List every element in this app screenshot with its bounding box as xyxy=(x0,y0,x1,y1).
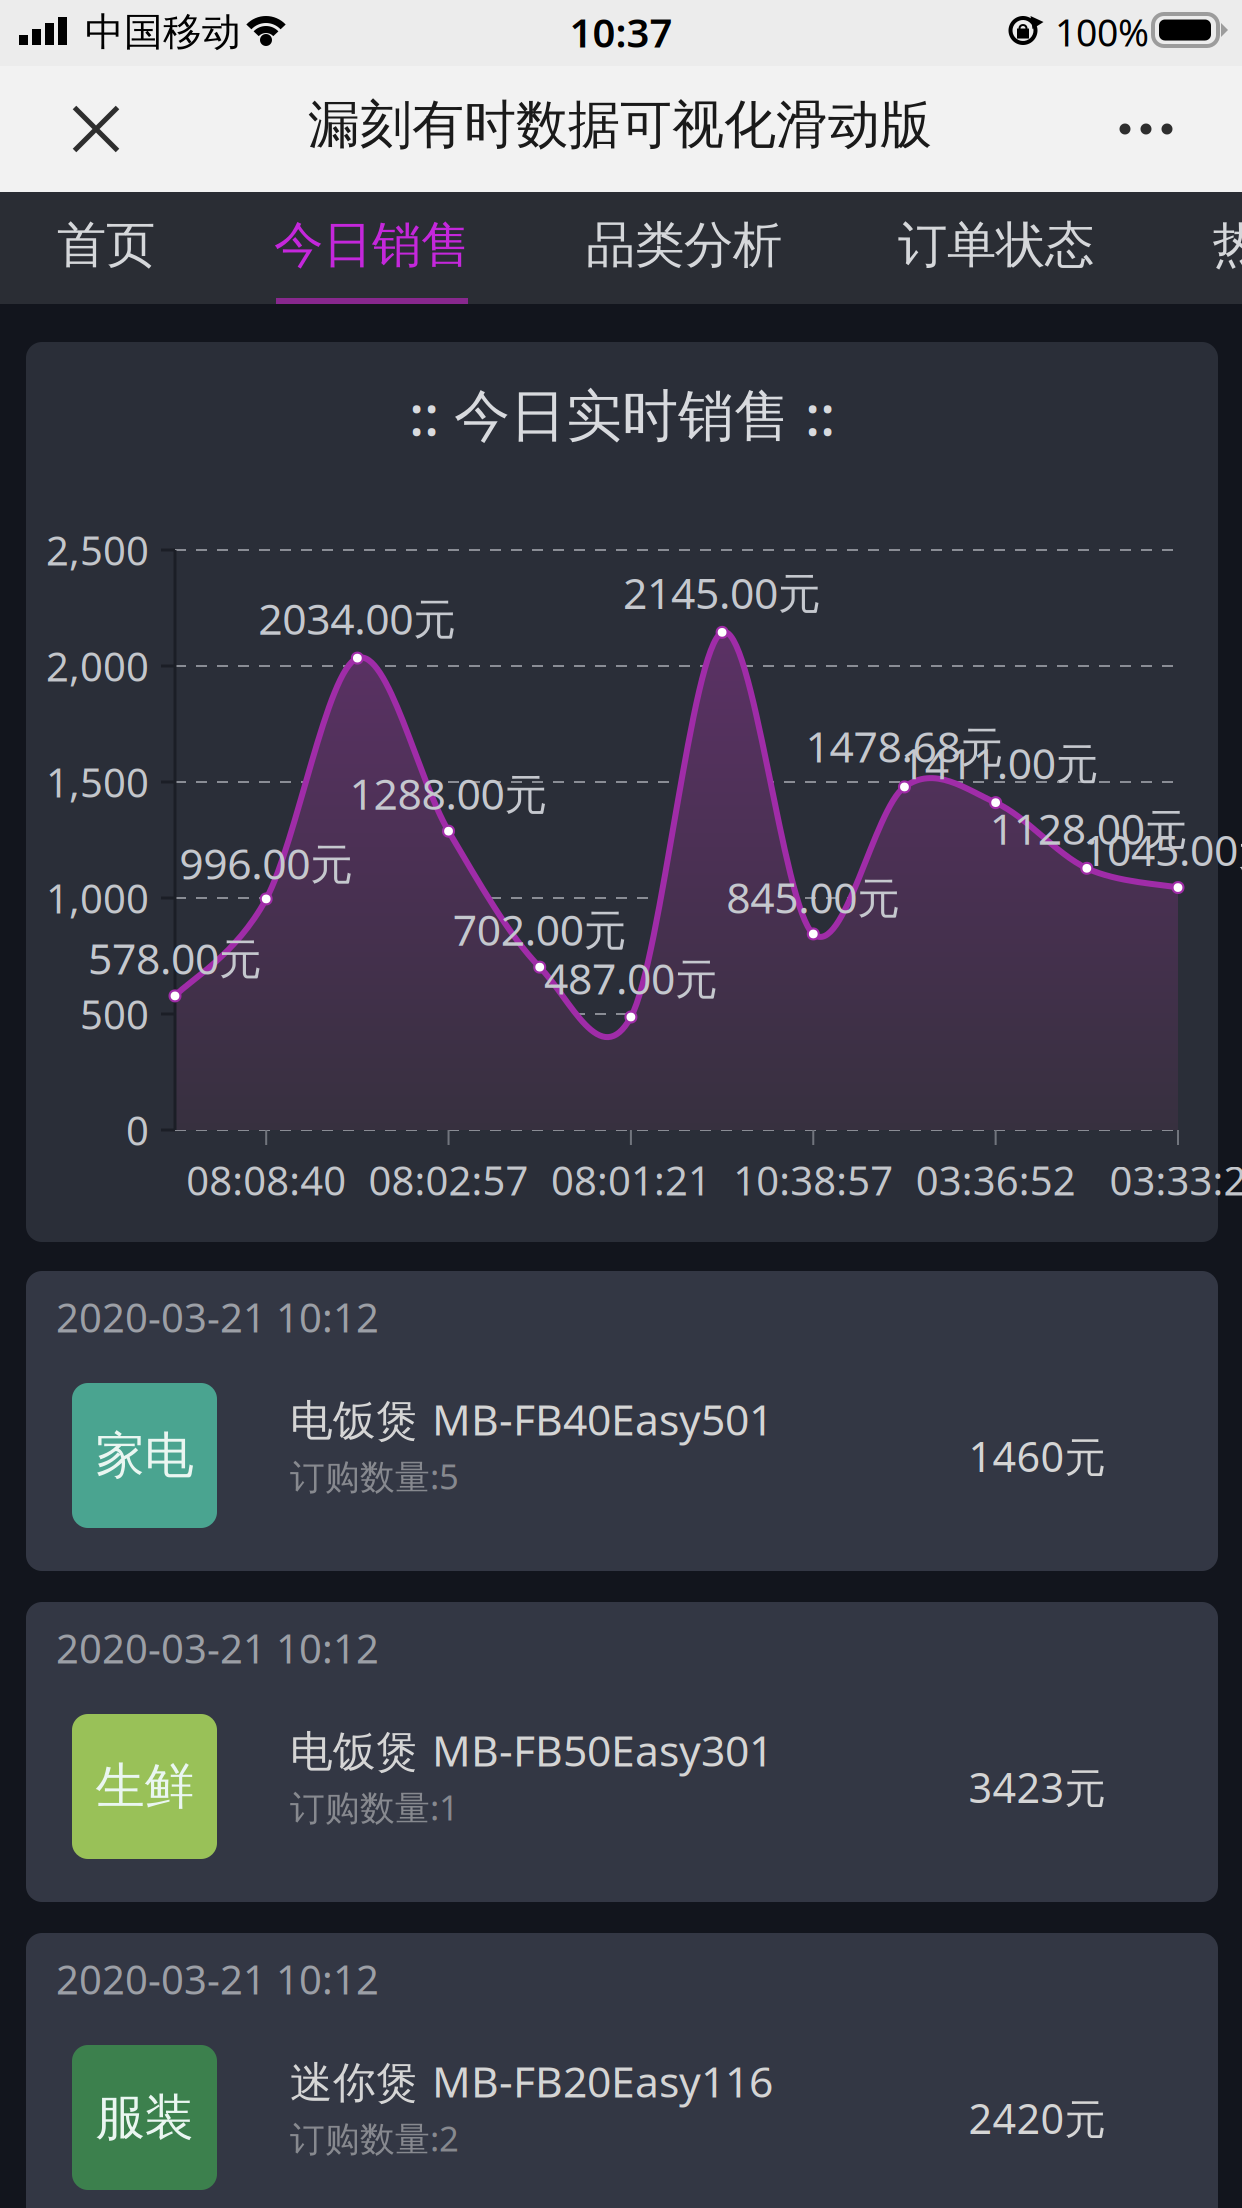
staticText: 1,500 xyxy=(46,755,149,808)
button[interactable]: 热 xyxy=(1181,192,1242,304)
staticText: 845.00元 xyxy=(726,869,900,925)
staticText: 03:36:52 xyxy=(916,1153,1076,1206)
staticText: 品类分析 xyxy=(586,215,782,275)
staticText: 2020-03-21 10:12 xyxy=(56,1290,379,1343)
staticText: 500 xyxy=(80,987,149,1040)
staticText: 2,000 xyxy=(46,639,149,692)
staticText: 电饭煲 MB-FB50Easy301 xyxy=(290,1722,773,1778)
staticText: 03:33:2 xyxy=(1109,1153,1242,1206)
staticText: 迷你煲 MB-FB20Easy116 xyxy=(290,2053,773,2109)
staticText: 3423元 xyxy=(968,1760,1105,1814)
staticText: 10:38:57 xyxy=(733,1153,893,1206)
staticText: 2420元 xyxy=(968,2091,1105,2145)
staticText: 家电 xyxy=(95,1425,193,1486)
staticText: 2020-03-21 10:12 xyxy=(56,1621,379,1674)
staticText: 1411.00元 xyxy=(901,734,1099,791)
staticText: 08:02:57 xyxy=(368,1153,528,1206)
staticText: 生鲜 xyxy=(95,1756,193,1817)
staticText: 08:08:40 xyxy=(186,1153,346,1206)
staticText: 1288.00元 xyxy=(349,765,547,822)
button[interactable]: 订单状态 xyxy=(840,192,1152,304)
staticText: 1460元 xyxy=(968,1429,1105,1483)
button[interactable]: 2020-03-21 10:12 xyxy=(26,1933,1218,2208)
button[interactable]: 2020-03-21 10:12 xyxy=(26,1271,1218,1571)
staticText: 订单状态 xyxy=(898,215,1094,275)
staticText: 578.00元 xyxy=(88,930,262,986)
staticText: 100% xyxy=(1055,7,1149,57)
staticText: 中国移动 xyxy=(85,8,241,56)
staticText: :: 今日实时销售 :: xyxy=(409,377,835,451)
staticText: 订购数量:2 xyxy=(290,2115,459,2161)
staticText: 1478.68元 xyxy=(805,718,1003,774)
staticText: 漏刻有时数据可视化滑动版 xyxy=(308,93,932,157)
staticText: 电饭煲 MB-FB40Easy501 xyxy=(290,1391,773,1447)
staticText: 热 xyxy=(1212,215,1242,275)
staticText: 订购数量:5 xyxy=(290,1453,459,1499)
staticText: 1,000 xyxy=(46,871,149,924)
button[interactable]: More xyxy=(1086,66,1206,192)
staticText: 996.00元 xyxy=(179,835,353,891)
button[interactable]: 品类分析 xyxy=(528,192,840,304)
staticText: 服装 xyxy=(95,2087,193,2148)
staticText: 1128.00元 xyxy=(990,800,1188,857)
staticText: 2,500 xyxy=(46,523,149,576)
staticText: 702.00元 xyxy=(453,901,627,957)
staticText: 2034.00元 xyxy=(258,590,456,646)
staticText: 2145.00元 xyxy=(623,564,821,621)
button[interactable]: Close xyxy=(36,66,156,192)
staticText: 1045.00元 xyxy=(1083,821,1242,878)
button[interactable]: 今日销售 xyxy=(216,192,528,304)
staticText: 2020-03-21 10:12 xyxy=(56,1952,379,2005)
button[interactable]: 2020-03-21 10:12 xyxy=(26,1602,1218,1902)
staticText: 08:01:21 xyxy=(551,1153,711,1206)
staticText: 首页 xyxy=(57,215,155,275)
staticText: 487.00元 xyxy=(544,950,718,1006)
button[interactable]: 首页 xyxy=(0,192,217,304)
staticText: 今日销售 xyxy=(274,215,470,275)
staticText: 0 xyxy=(126,1103,149,1156)
staticText: 10:37 xyxy=(569,5,672,58)
staticText: 订购数量:1 xyxy=(290,1784,459,1830)
